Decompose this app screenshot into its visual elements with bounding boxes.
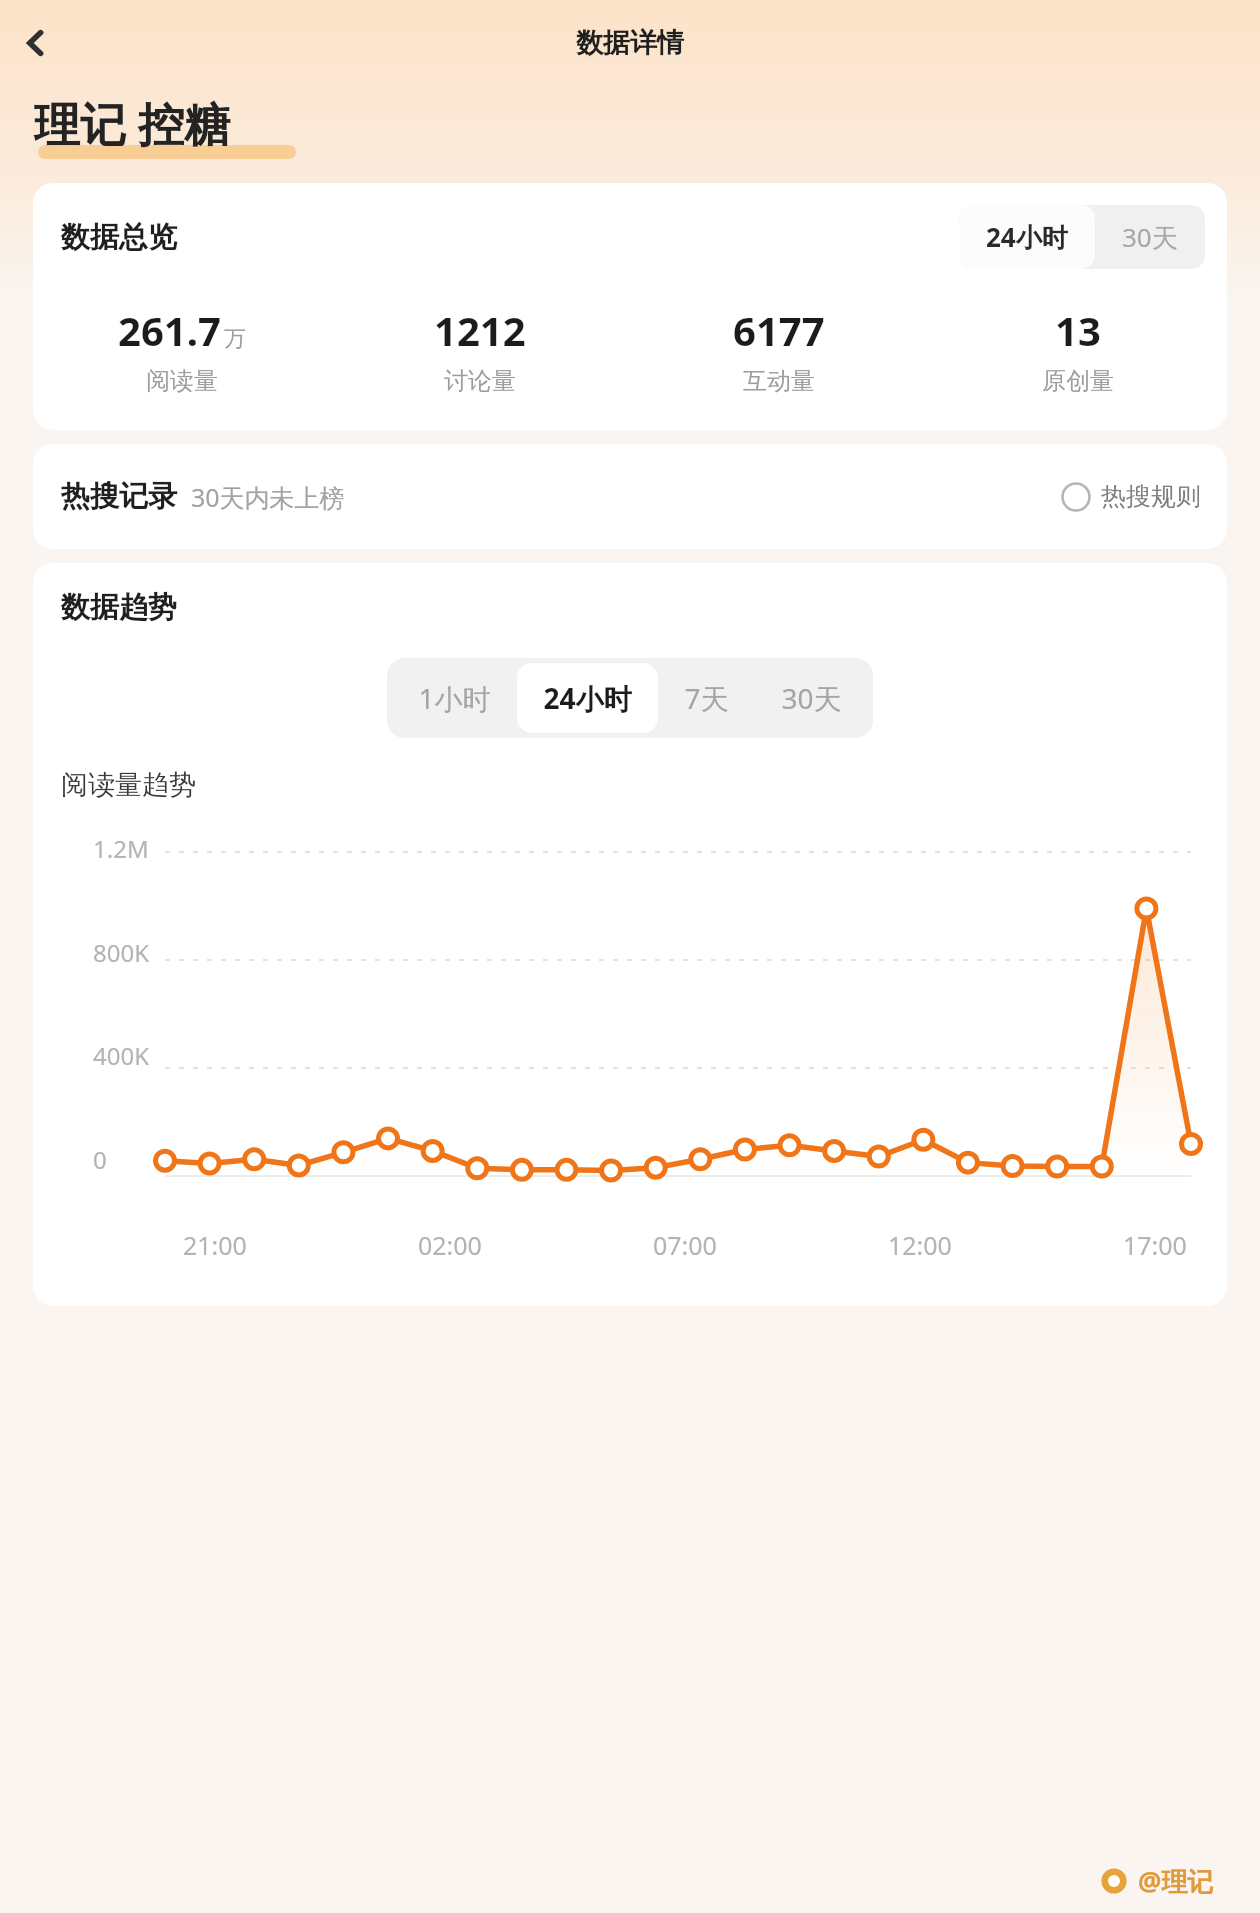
staticText: 400K <box>93 1039 150 1072</box>
staticText: 阅读量趋势 <box>61 768 196 802</box>
staticText: 热搜规则 <box>1101 481 1201 512</box>
staticText: @理记 <box>1138 1863 1214 1899</box>
staticText: 7天 <box>684 679 729 717</box>
button[interactable]: 7天 <box>658 663 755 733</box>
staticText: 261.7 <box>118 303 221 357</box>
staticText: 1.2M <box>93 832 149 865</box>
staticText: 讨论量 <box>444 366 516 396</box>
staticText: 万 <box>224 325 246 353</box>
button[interactable]: Back <box>8 15 64 71</box>
staticText: 24小时 <box>986 219 1068 255</box>
staticText: 数据总览 <box>61 219 177 256</box>
button[interactable]: 热搜规则 <box>1061 481 1201 512</box>
staticText: 24小时 <box>543 679 632 717</box>
staticText: 1小时 <box>418 679 491 717</box>
staticText: 1212 <box>434 303 526 357</box>
button[interactable]: 30天 <box>1095 205 1205 269</box>
button[interactable]: 13 <box>928 303 1227 396</box>
staticText: 6177 <box>733 303 825 357</box>
staticText: 数据详情 <box>576 26 684 60</box>
button[interactable]: 1小时 <box>392 663 517 733</box>
staticText: 12:00 <box>888 1228 952 1262</box>
staticText: 30天 <box>1122 219 1178 255</box>
staticText: 原创量 <box>1042 366 1114 396</box>
button[interactable]: 1212 <box>331 303 629 396</box>
button[interactable]: 24小时 <box>517 663 658 733</box>
staticText: 互动量 <box>743 366 815 396</box>
staticText: 0 <box>93 1143 107 1176</box>
staticText: 热搜记录 <box>61 478 177 515</box>
staticText: 02:00 <box>418 1228 482 1262</box>
button[interactable]: 6177 <box>629 303 928 396</box>
button[interactable]: 24小时 <box>959 205 1095 269</box>
staticText: 30天内未上榜 <box>191 480 345 514</box>
staticText: 30天 <box>781 679 842 717</box>
staticText: 800K <box>93 936 150 969</box>
staticText: 数据趋势 <box>61 589 177 626</box>
button[interactable]: 261.7 <box>33 303 331 396</box>
staticText: 阅读量 <box>146 366 218 396</box>
button[interactable]: 30天 <box>755 663 868 733</box>
staticText: 21:00 <box>183 1228 247 1262</box>
staticText: 17:00 <box>1123 1228 1187 1262</box>
staticText: 理记 控糖 <box>34 92 230 155</box>
staticText: 07:00 <box>653 1228 717 1262</box>
staticText: 13 <box>1055 303 1101 357</box>
